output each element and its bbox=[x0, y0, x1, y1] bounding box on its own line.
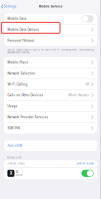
staticText: Usage bbox=[7, 105, 17, 108]
staticText: Mobile Data bbox=[7, 17, 26, 20]
button[interactable]: Network Selection bbox=[4, 68, 97, 79]
button[interactable]: Mobile Plans bbox=[4, 57, 97, 68]
staticText: When Nearby bbox=[68, 94, 89, 97]
staticText: Add eSIM bbox=[7, 144, 22, 147]
staticText: X bbox=[9, 171, 12, 176]
staticText: MOBILE DATA bbox=[7, 156, 22, 159]
button[interactable]: SIM PIN bbox=[4, 123, 97, 133]
staticText: Mobile Data Options bbox=[7, 28, 39, 31]
staticText: Wi-Fi Calling bbox=[7, 83, 27, 86]
button[interactable]: SORT BY NAME bbox=[77, 162, 94, 165]
staticText: SORT BY NAME bbox=[77, 162, 94, 165]
staticText: APPS BY USAGE bbox=[7, 162, 24, 165]
staticText: Network Provider Services bbox=[7, 115, 48, 119]
staticText: 264 KB bbox=[16, 174, 22, 176]
button[interactable]: Calls on Other Devices bbox=[4, 90, 97, 101]
staticText: X bbox=[16, 170, 18, 174]
staticText: Mobile Service bbox=[38, 5, 62, 8]
button[interactable]: Add eSIM bbox=[4, 140, 97, 151]
button[interactable]: X bbox=[4, 168, 97, 179]
staticText: Mobile Plans bbox=[7, 61, 28, 64]
button[interactable]: Wi-Fi Calling bbox=[4, 79, 97, 90]
button[interactable]: Mobile Data bbox=[4, 13, 97, 24]
button[interactable]: Personal Hotspot bbox=[4, 35, 97, 46]
staticText: Calls on Other Devices bbox=[7, 94, 43, 97]
button[interactable]: Usage bbox=[4, 101, 97, 112]
staticText: Settings bbox=[4, 5, 17, 8]
staticText: Turn off mobile data to restrict all dat… bbox=[7, 48, 93, 54]
staticText: Network Selection bbox=[7, 72, 35, 75]
staticText: Off bbox=[85, 83, 89, 86]
button[interactable]: Network Provider Services bbox=[4, 112, 97, 122]
staticText: SIM PIN bbox=[7, 126, 19, 130]
button[interactable]: Settings bbox=[0, 1, 17, 11]
staticText: Personal Hotspot bbox=[7, 39, 34, 42]
button[interactable]: Mobile Data Options bbox=[4, 24, 97, 35]
